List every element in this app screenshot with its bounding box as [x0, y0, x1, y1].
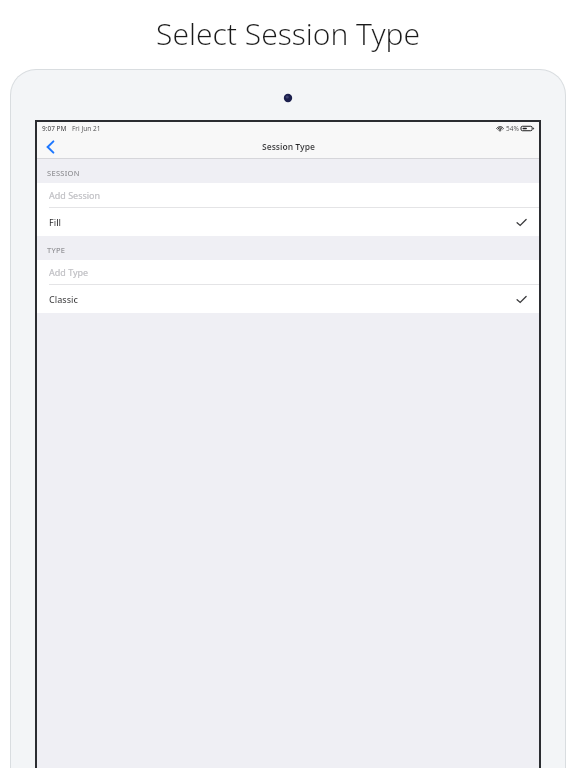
- staticText: Fri Jun 21: [72, 124, 101, 133]
- staticText: Fill: [49, 216, 62, 228]
- button[interactable]: Back: [37, 134, 63, 159]
- staticText: Session Type: [262, 141, 315, 153]
- staticText: Classic: [49, 293, 78, 305]
- button[interactable]: Add Type: [37, 260, 539, 284]
- staticText: Select Session Type: [156, 13, 420, 54]
- staticText: Add Session: [49, 189, 101, 201]
- button[interactable]: Add Session: [37, 183, 539, 207]
- button[interactable]: Classic: [37, 285, 539, 313]
- staticText: SESSION: [47, 168, 80, 178]
- staticText: TYPE: [47, 245, 66, 255]
- staticText: 54%: [506, 124, 519, 133]
- staticText: 9:07 PM: [42, 124, 67, 133]
- button[interactable]: Fill: [37, 208, 539, 236]
- staticText: Add Type: [49, 266, 89, 278]
